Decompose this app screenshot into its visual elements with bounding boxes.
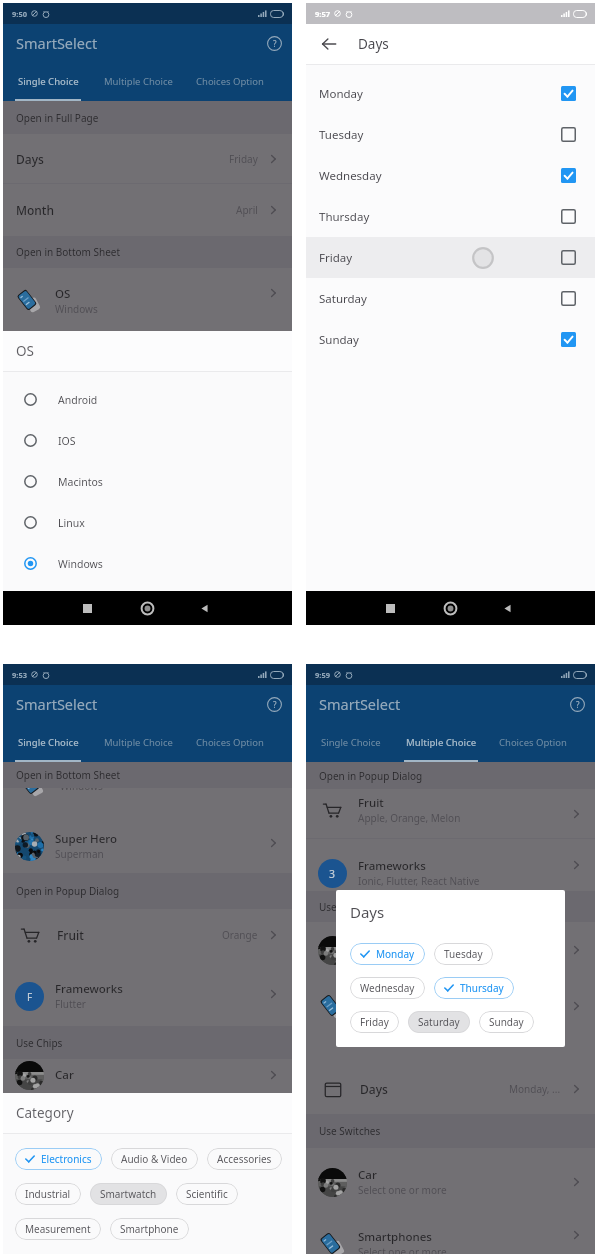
button[interactable]: Friday: [350, 1011, 399, 1033]
staticText: Tuesday: [444, 947, 483, 961]
staticText: OS: [16, 342, 34, 360]
button[interactable]: Single Choice: [11, 723, 85, 762]
staticText: Sunday: [319, 332, 359, 348]
staticText: Open in Popup Dialog: [16, 884, 120, 898]
button[interactable]: Linux: [3, 502, 292, 543]
button[interactable]: Android: [3, 379, 292, 420]
button[interactable]: Back: [491, 592, 523, 624]
staticText: Apple, Orange, Melon: [358, 811, 461, 825]
button[interactable]: Windows: [3, 543, 292, 584]
button[interactable]: Accessories: [207, 1148, 282, 1170]
button[interactable]: Back: [188, 592, 220, 624]
button[interactable]: Monday: [350, 943, 425, 965]
button[interactable]: Smartphones: [306, 1216, 595, 1254]
staticText: Audio & Video: [121, 1152, 188, 1166]
staticText: Choices Option: [196, 736, 264, 749]
staticText: Fruit: [57, 927, 84, 943]
button[interactable]: Friday: [306, 237, 595, 278]
button[interactable]: Back: [318, 33, 340, 55]
button[interactable]: IOS: [3, 420, 292, 461]
staticText: Ionic, Flutter, React Native: [358, 874, 480, 888]
staticText: Friday: [319, 250, 353, 266]
button[interactable]: Help: [263, 32, 285, 54]
button[interactable]: Tuesday: [434, 943, 493, 965]
button[interactable]: Tuesday: [306, 114, 595, 155]
button[interactable]: [306, 922, 595, 978]
staticText: Monday: [376, 947, 415, 961]
button[interactable]: Smartwatch: [90, 1183, 167, 1205]
button[interactable]: Saturday: [306, 278, 595, 319]
button[interactable]: Home: [131, 592, 163, 624]
staticText: ?: [576, 699, 580, 710]
staticText: Days: [358, 35, 389, 53]
staticText: Open in Bottom Sheet: [16, 768, 121, 782]
button[interactable]: Smartphone: [110, 1218, 189, 1240]
button[interactable]: Thursday: [434, 977, 514, 999]
staticText: SmartSelect: [16, 33, 98, 53]
button[interactable]: Days: [306, 1064, 595, 1114]
staticText: Tuesday: [319, 127, 364, 143]
button[interactable]: Choices Option: [493, 723, 573, 762]
button[interactable]: Car: [3, 1059, 292, 1091]
staticText: 9:50: [12, 9, 27, 19]
staticText: Open in Full Page: [16, 111, 99, 125]
staticText: Frameworks: [358, 858, 426, 874]
button[interactable]: Saturday: [408, 1011, 470, 1033]
button[interactable]: Super Hero: [3, 812, 292, 873]
staticText: Month: [16, 202, 54, 218]
staticText: Frameworks: [55, 981, 123, 997]
button[interactable]: Industrial: [15, 1183, 81, 1205]
button[interactable]: Recents: [71, 592, 103, 624]
staticText: SmartSelect: [319, 694, 401, 714]
button[interactable]: Multiple Choice: [97, 62, 179, 101]
staticText: Days: [16, 151, 44, 167]
button[interactable]: Macintos: [3, 461, 292, 502]
staticText: Single Choice: [321, 736, 381, 749]
button[interactable]: Days: [3, 134, 292, 183]
button[interactable]: Recents: [374, 592, 406, 624]
button[interactable]: Car: [306, 1148, 595, 1216]
staticText: OS: [55, 286, 71, 302]
staticText: IOS: [58, 434, 76, 448]
button[interactable]: Choices Option: [190, 62, 270, 101]
staticText: 9:59: [315, 670, 330, 680]
button[interactable]: Multiple Choice: [97, 723, 179, 762]
staticText: Orange: [222, 928, 258, 942]
button[interactable]: Wednesday: [350, 977, 425, 999]
button[interactable]: Home: [434, 592, 466, 624]
staticText: F: [27, 990, 33, 1004]
button[interactable]: Electronics: [15, 1148, 102, 1170]
staticText: Smartwatch: [100, 1187, 157, 1201]
button[interactable]: Fruit: [306, 789, 595, 838]
staticText: Flutter: [55, 997, 86, 1011]
button[interactable]: OS: [3, 268, 292, 318]
staticText: Macintos: [58, 475, 103, 489]
button[interactable]: F: [3, 961, 292, 1026]
button[interactable]: Sunday: [479, 1011, 534, 1033]
staticText: Car: [55, 1067, 74, 1083]
button[interactable]: Sunday: [306, 319, 595, 360]
button[interactable]: Month: [3, 184, 292, 236]
button[interactable]: Wednesday: [306, 155, 595, 196]
staticText: Thursday: [319, 209, 370, 225]
button[interactable]: Multiple Choice: [400, 723, 482, 762]
button[interactable]: Choices Option: [190, 723, 270, 762]
button[interactable]: Scientific: [176, 1183, 238, 1205]
button[interactable]: Help: [566, 693, 588, 715]
staticText: Measurement: [25, 1222, 91, 1236]
staticText: 3: [329, 867, 336, 881]
button[interactable]: Audio & Video: [111, 1148, 198, 1170]
button[interactable]: Monday: [306, 73, 595, 114]
button[interactable]: Measurement: [15, 1218, 101, 1240]
button[interactable]: Help: [263, 693, 285, 715]
staticText: Wednesday: [319, 168, 382, 184]
staticText: Car: [358, 1167, 377, 1183]
button[interactable]: 3: [306, 839, 595, 891]
button[interactable]: Single Choice: [314, 723, 388, 762]
button[interactable]: Thursday: [306, 196, 595, 237]
staticText: Days: [350, 902, 385, 922]
button[interactable]: Fruit: [3, 909, 292, 961]
staticText: Select one or more: [358, 1245, 447, 1254]
button[interactable]: Single Choice: [11, 62, 85, 101]
button[interactable]: [306, 978, 595, 1034]
